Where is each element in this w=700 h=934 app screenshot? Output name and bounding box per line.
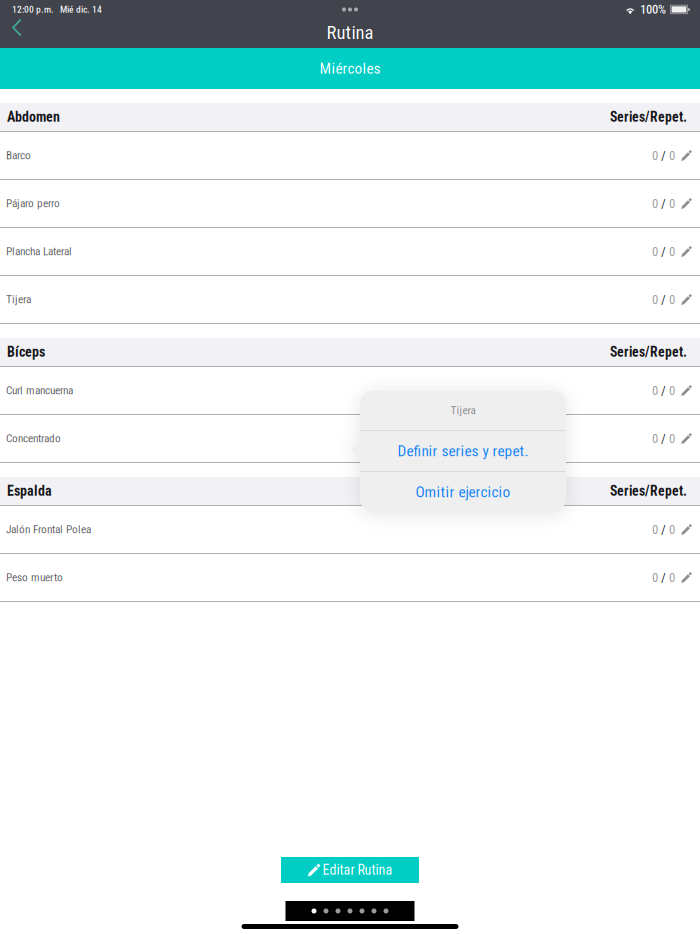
staticText: Series/Repet. — [610, 344, 687, 360]
button[interactable]: Tijera — [0, 276, 700, 323]
staticText: 0 — [652, 148, 658, 163]
button[interactable]: Back — [0, 18, 35, 47]
staticText: / — [658, 522, 669, 537]
staticText: Rutina — [326, 22, 373, 43]
staticText: 0 — [652, 383, 658, 398]
button[interactable]: Editar Rutina — [281, 857, 419, 883]
staticText: Jalón Frontal Polea — [6, 523, 91, 536]
button[interactable]: Concentrado — [0, 415, 700, 462]
staticText: Espalda — [7, 483, 52, 499]
staticText: Abdomen — [7, 109, 60, 125]
staticText: Series/Repet. — [610, 483, 687, 499]
button[interactable]: Plancha Lateral — [0, 228, 700, 275]
staticText: / — [658, 148, 669, 163]
staticText: Pájaro perro — [6, 197, 60, 210]
button[interactable]: Definir series y repet. — [360, 431, 566, 471]
staticText: Series/Repet. — [610, 109, 687, 125]
staticText: 0 — [669, 148, 675, 163]
staticText: Tijera — [450, 404, 475, 417]
staticText: Peso muerto — [6, 571, 63, 584]
staticText: 0 — [652, 196, 658, 211]
staticText: / — [658, 431, 669, 446]
staticText: Plancha Lateral — [6, 245, 72, 258]
staticText: 0 — [669, 522, 675, 537]
staticText: Curl mancuerna — [6, 384, 73, 397]
button[interactable]: Barco — [0, 132, 700, 179]
staticText: Miércoles — [319, 59, 380, 77]
staticText: / — [658, 383, 669, 398]
staticText: 0 — [652, 570, 658, 585]
staticText: Tijera — [6, 293, 31, 306]
staticText: 0 — [669, 383, 675, 398]
staticText: Definir series y repet. — [397, 442, 528, 460]
staticText: Editar Rutina — [322, 862, 392, 878]
button[interactable]: Jalón Frontal Polea — [0, 506, 700, 553]
staticText: Bíceps — [7, 344, 45, 360]
staticText: 0 — [669, 570, 675, 585]
staticText: / — [658, 292, 669, 307]
staticText: Concentrado — [6, 432, 61, 445]
staticText: 0 — [652, 292, 658, 307]
staticText: / — [658, 570, 669, 585]
staticText: 0 — [652, 431, 658, 446]
staticText: 100% — [640, 2, 666, 17]
staticText: / — [658, 244, 669, 259]
staticText: / — [658, 196, 669, 211]
button[interactable]: Omitir ejercicio — [360, 472, 566, 512]
staticText: 0 — [669, 431, 675, 446]
staticText: 0 — [669, 292, 675, 307]
staticText: 0 — [669, 196, 675, 211]
staticText: 0 — [652, 522, 658, 537]
button[interactable]: Peso muerto — [0, 554, 700, 601]
button[interactable]: Miércoles — [0, 48, 700, 89]
staticText: 12:00 p.m. Mié dic. 14 — [12, 4, 102, 15]
staticText: Omitir ejercicio — [415, 483, 510, 501]
staticText: 0 — [652, 244, 658, 259]
staticText: 0 — [669, 244, 675, 259]
staticText: Barco — [6, 149, 31, 162]
button[interactable]: Curl mancuerna — [0, 367, 700, 414]
button[interactable]: Pájaro perro — [0, 180, 700, 227]
